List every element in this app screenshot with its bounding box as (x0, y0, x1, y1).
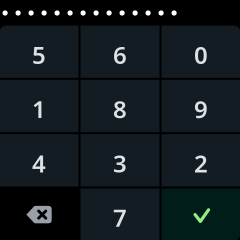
button[interactable]: 8 (80, 80, 159, 132)
staticText: 0 (194, 39, 208, 71)
button[interactable]: 6 (80, 26, 159, 78)
button[interactable]: 1 (0, 80, 78, 132)
staticText: 8 (113, 93, 127, 125)
staticText: 6 (113, 39, 127, 71)
button[interactable]: 2 (161, 134, 240, 186)
button[interactable]: 5 (0, 26, 78, 78)
button[interactable]: 0 (161, 26, 240, 78)
staticText: 9 (194, 93, 208, 125)
button[interactable]: 7 (80, 188, 159, 240)
staticText: 7 (113, 202, 127, 233)
button[interactable]: 4 (0, 134, 78, 186)
staticText: 4 (32, 147, 46, 179)
staticText: 1 (32, 93, 46, 125)
staticText: 2 (194, 147, 208, 179)
staticText: 5 (32, 39, 46, 71)
staticText: 3 (113, 147, 127, 179)
button[interactable]: Confirm passcode (161, 188, 240, 240)
button[interactable]: Delete (0, 188, 78, 240)
button[interactable]: 3 (80, 134, 159, 186)
button[interactable]: 9 (161, 80, 240, 132)
